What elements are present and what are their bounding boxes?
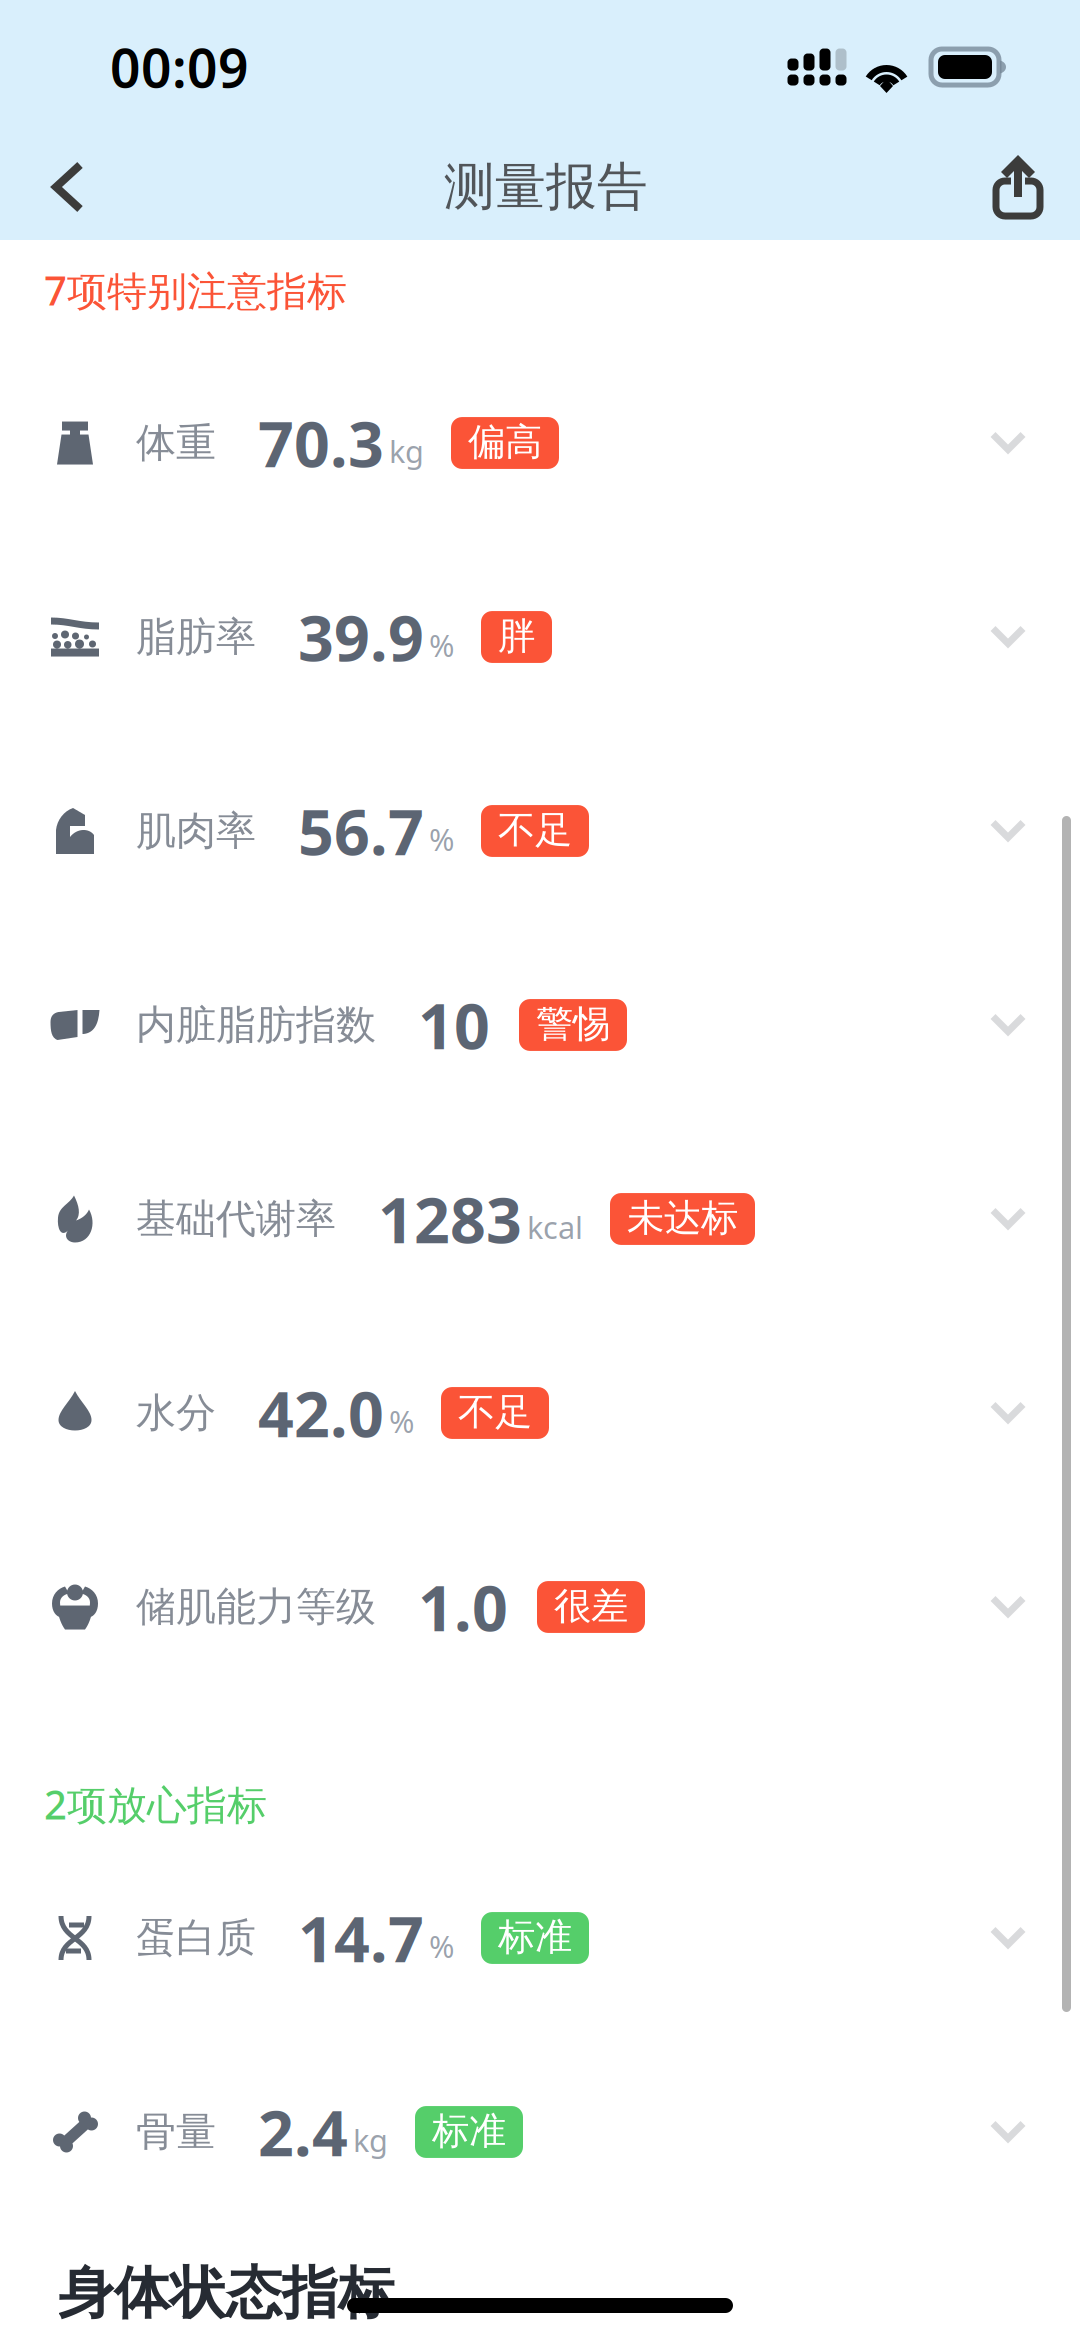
button[interactable]: 储肌能力等级 <box>0 1510 1080 1704</box>
staticText: 脂肪率 <box>136 612 256 661</box>
staticText: % <box>429 625 454 665</box>
staticText: 不足 <box>458 1389 532 1435</box>
staticText: % <box>389 1401 414 1441</box>
button[interactable]: 脂肪率 <box>0 540 1080 734</box>
staticText: 测量报告 <box>444 156 648 218</box>
staticText: 偏高 <box>468 419 542 465</box>
staticText: 标准 <box>432 2108 506 2154</box>
staticText: 很差 <box>554 1583 628 1629</box>
staticText: 2.4 <box>258 2090 348 2174</box>
button[interactable]: 肌肉率 <box>0 734 1080 928</box>
staticText: 1.0 <box>418 1565 508 1649</box>
staticText: 10 <box>418 983 490 1067</box>
staticText: 未达标 <box>627 1195 738 1241</box>
staticText: 标准 <box>498 1914 572 1960</box>
staticText: 00:09 <box>110 32 249 102</box>
staticText: 胖 <box>498 613 535 659</box>
staticText: 水分 <box>136 1388 216 1437</box>
staticText: 肌肉率 <box>136 806 256 855</box>
staticText: 不足 <box>498 807 572 853</box>
staticText: 70.3 <box>258 401 384 485</box>
staticText: kg <box>353 2120 388 2160</box>
staticText: 基础代谢率 <box>136 1194 336 1243</box>
staticText: 骨量 <box>136 2107 216 2156</box>
staticText: 42.0 <box>258 1371 384 1455</box>
staticText: 1283 <box>378 1177 522 1261</box>
staticText: kcal <box>527 1207 583 1247</box>
staticText: 56.7 <box>298 789 424 873</box>
button[interactable]: 蛋白质 <box>0 1841 1080 2035</box>
staticText: 储肌能力等级 <box>136 1582 376 1631</box>
staticText: 身体状态指标 <box>58 2259 394 2328</box>
button[interactable]: 基础代谢率 <box>0 1122 1080 1316</box>
staticText: 蛋白质 <box>136 1913 256 1962</box>
staticText: % <box>429 1926 454 1966</box>
button[interactable]: 内脏脂肪指数 <box>0 928 1080 1122</box>
staticText: % <box>429 819 454 859</box>
button[interactable]: 体重 <box>0 346 1080 540</box>
button[interactable]: 水分 <box>0 1316 1080 1510</box>
button[interactable]: Back <box>0 134 136 240</box>
staticText: 7项特别注意指标 <box>44 263 347 316</box>
staticText: 14.7 <box>298 1896 424 1980</box>
staticText: 2项放心指标 <box>44 1777 267 1830</box>
staticText: 内脏脂肪指数 <box>136 1000 376 1049</box>
staticText: kg <box>389 431 424 471</box>
staticText: 39.9 <box>298 595 424 679</box>
button[interactable]: Share <box>956 134 1080 240</box>
staticText: 体重 <box>136 418 216 467</box>
button[interactable]: 骨量 <box>0 2035 1080 2229</box>
staticText: 警惕 <box>536 1001 610 1047</box>
